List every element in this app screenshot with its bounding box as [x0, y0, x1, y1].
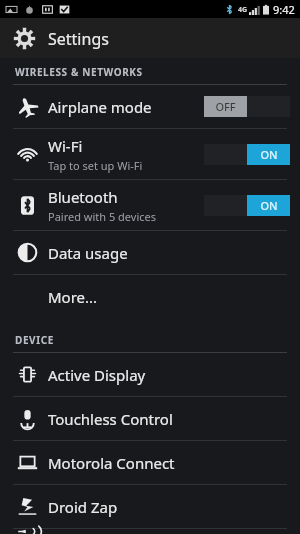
button[interactable]: Toggle on	[204, 144, 290, 165]
staticText: Settings	[48, 28, 109, 50]
staticText: Data usage	[48, 243, 128, 263]
staticText: Tap to set up Wi-Fi	[48, 158, 143, 173]
staticText: Motorola Connect	[48, 453, 175, 473]
button[interactable]: Sound	[0, 529, 300, 534]
button[interactable]: Active Display	[0, 353, 300, 396]
staticText: Bluetooth	[48, 187, 118, 207]
staticText: WIRELESS & NETWORKS	[15, 65, 143, 79]
staticText: Droid Zap	[48, 497, 118, 517]
staticText: Airplane mode	[48, 97, 152, 117]
staticText: Paired with 5 devices	[48, 209, 157, 224]
staticText: DEVICE	[15, 333, 54, 347]
staticText: More...	[48, 287, 98, 307]
button[interactable]: Droid Zap	[0, 485, 300, 528]
staticText: Touchless Control	[48, 409, 173, 429]
staticText: Wi-Fi	[48, 136, 83, 156]
button[interactable]: Motorola Connect	[0, 441, 300, 484]
staticText: 9:42	[273, 2, 295, 17]
button[interactable]: Bluetooth	[0, 180, 300, 230]
staticText: OFF	[215, 99, 236, 114]
button[interactable]: Airplane mode	[0, 85, 300, 128]
staticText: Active Display	[48, 365, 146, 385]
staticText: 4G	[238, 5, 248, 15]
button[interactable]: Airplane mode off	[204, 96, 290, 117]
button[interactable]: Wi-Fi	[0, 129, 300, 179]
button[interactable]: More...	[0, 275, 300, 318]
staticText: ON	[260, 147, 278, 162]
button[interactable]: Touchless Control	[0, 397, 300, 440]
staticText: ON	[260, 198, 278, 213]
button[interactable]: Toggle on	[204, 195, 290, 216]
button[interactable]: Data usage	[0, 231, 300, 274]
